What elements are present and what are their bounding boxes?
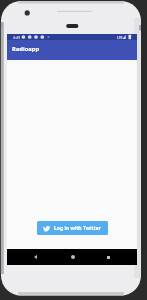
staticText: 4:49 <box>13 35 21 40</box>
staticText: LTE <box>117 35 123 40</box>
staticText: Radioapp <box>12 45 40 53</box>
button[interactable]: Log in with Twitter <box>37 221 108 235</box>
button[interactable]: Back <box>28 249 43 265</box>
staticText: Log in with Twitter <box>54 225 102 232</box>
button[interactable]: Recents <box>101 249 116 265</box>
button[interactable]: Home <box>65 249 80 265</box>
